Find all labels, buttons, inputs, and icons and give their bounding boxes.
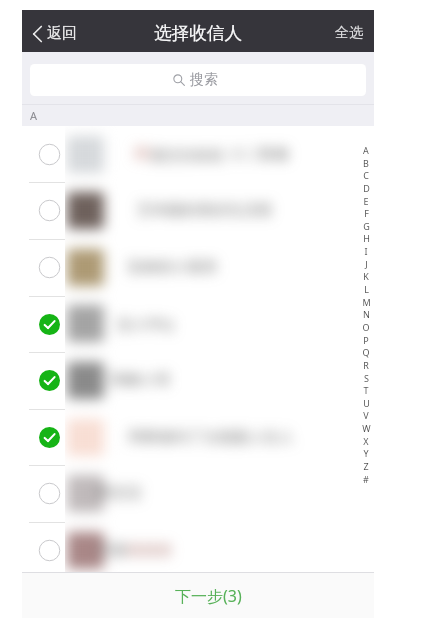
staticText: U [363, 397, 370, 409]
button[interactable]: Not selected [22, 239, 65, 296]
button[interactable]: Not selected [22, 522, 65, 579]
button[interactable]: 搜索 [30, 64, 366, 96]
staticText: N [363, 308, 370, 320]
button[interactable]: 全选 [324, 15, 374, 51]
button[interactable]: Selected [22, 409, 65, 466]
staticText: W [362, 422, 371, 434]
staticText: V [363, 409, 369, 421]
staticText: # [363, 473, 369, 485]
staticText: R [363, 359, 369, 371]
button[interactable]: Alphabet index [359, 143, 373, 493]
staticText: L [364, 283, 369, 295]
staticText: 阿峰小哥 [111, 371, 171, 390]
staticText: 下一步(3) [175, 585, 242, 607]
staticText: I [364, 245, 368, 257]
staticText: C [363, 169, 369, 181]
staticText: K [363, 270, 369, 282]
staticText: 搜索 [190, 71, 218, 89]
staticText: A [30, 108, 38, 123]
staticText: 全选 [335, 24, 363, 42]
staticText: J [365, 258, 368, 270]
staticText: M [362, 296, 371, 308]
staticText: 阿宝宝 [97, 484, 142, 503]
staticText: 安小宇Q [117, 314, 174, 334]
staticText: 人生人 [249, 428, 294, 447]
staticText: F [364, 207, 369, 219]
staticText: 阿斯顿马丁古德曼 [129, 428, 249, 447]
staticText: X [363, 435, 369, 447]
staticText: O [362, 321, 370, 333]
button[interactable]: 下一步(3) [22, 573, 374, 618]
staticText: 返回 [47, 24, 77, 43]
staticText: T [363, 384, 369, 396]
staticText: G [363, 220, 370, 232]
staticText: P [363, 334, 369, 346]
staticText: 艾丽 [97, 541, 127, 560]
staticText: 里巴巴旺旺 [150, 145, 229, 165]
staticText: H [363, 232, 370, 244]
staticText: A [363, 144, 369, 156]
button[interactable]: Selected [22, 352, 65, 409]
staticText: Z [363, 460, 369, 472]
staticText: D [363, 182, 370, 194]
button[interactable]: Selected [22, 296, 65, 353]
staticText: Y [363, 447, 369, 459]
staticText: 丝丝丝 [127, 541, 172, 560]
staticText: S [364, 372, 369, 384]
staticText: 选择收信人 [154, 22, 242, 44]
staticText: 艾米丽的美好生活馆 [137, 201, 272, 220]
staticText: Q [362, 346, 370, 358]
staticText: E [363, 195, 369, 207]
staticText: 小二客服 [229, 145, 289, 164]
staticText: B [363, 157, 369, 169]
button[interactable]: Not selected [22, 126, 65, 183]
button[interactable]: Not selected [22, 465, 65, 522]
staticText: 阿 [135, 145, 150, 164]
button[interactable]: Not selected [22, 182, 65, 239]
button[interactable]: 返回 [22, 17, 89, 50]
staticText: 安静的小屋房 [127, 258, 217, 277]
